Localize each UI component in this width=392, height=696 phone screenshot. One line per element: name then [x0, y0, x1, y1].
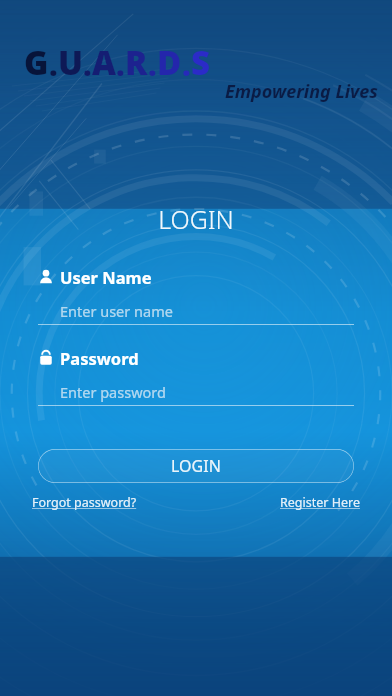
staticText: Enter user name: [60, 301, 173, 321]
button[interactable]: Forgot password?: [30, 492, 139, 513]
staticText: .: [83, 44, 92, 85]
staticText: Password: [60, 347, 139, 369]
staticText: Register Here: [280, 494, 360, 511]
staticText: G: [24, 40, 49, 85]
staticText: .: [116, 44, 125, 85]
staticText: User Name: [60, 266, 152, 288]
staticText: .: [49, 44, 58, 85]
staticText: D: [157, 40, 182, 85]
staticText: U: [58, 40, 83, 85]
staticText: Forgot password?: [32, 494, 137, 511]
staticText: .: [148, 44, 157, 85]
button[interactable]: Enter user name: [38, 298, 354, 324]
staticText: Enter password: [60, 382, 166, 402]
button[interactable]: LOGIN: [38, 449, 354, 483]
button[interactable]: Enter password: [38, 379, 354, 405]
staticText: R: [125, 40, 148, 85]
button[interactable]: Register Here: [278, 492, 362, 513]
staticText: A: [92, 40, 116, 85]
staticText: LOGIN: [0, 202, 392, 236]
staticText: S: [191, 40, 211, 85]
staticText: LOGIN: [171, 455, 221, 477]
staticText: .: [182, 44, 191, 85]
staticText: Empowering Lives: [225, 79, 378, 104]
